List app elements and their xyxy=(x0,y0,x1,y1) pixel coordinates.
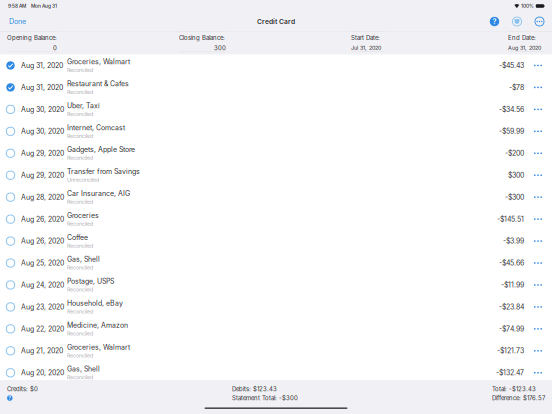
staticText: -$121.73 xyxy=(497,347,524,355)
staticText: Internet, Comcast xyxy=(67,123,125,132)
staticText: -$300 xyxy=(505,193,524,201)
staticText: -$45.66 xyxy=(499,259,524,267)
staticText: -$11.99 xyxy=(501,281,524,289)
staticText: Aug 29, 2020 xyxy=(21,149,64,157)
staticText: Aug 29, 2020 xyxy=(21,171,64,179)
button[interactable]: Aug 31, 2020 xyxy=(0,54,552,76)
staticText: Closing Balance: xyxy=(179,34,225,42)
button[interactable]: Badge xyxy=(509,14,524,29)
staticText: Aug 20, 2020 xyxy=(21,369,64,377)
staticText: Uber, Taxi xyxy=(67,101,100,110)
button[interactable]: Aug 26, 2020 xyxy=(0,208,552,230)
staticText: End Date: xyxy=(508,34,536,42)
staticText: Statement Total: -$300 xyxy=(232,394,298,402)
button[interactable]: Aug 24, 2020 xyxy=(0,274,552,296)
staticText: -$74.99 xyxy=(499,325,524,333)
staticText: Reconciled xyxy=(67,374,93,381)
staticText: Household, eBay xyxy=(67,299,123,307)
staticText: Coffee xyxy=(67,233,88,242)
staticText: -$23.84 xyxy=(499,303,524,311)
staticText: Reconciled xyxy=(67,220,93,227)
staticText: Gas, Shell xyxy=(67,365,100,373)
button[interactable]: Aug 31, 2020 xyxy=(0,76,552,98)
button[interactable]: Aug 21, 2020 xyxy=(0,340,552,362)
staticText: Aug 23, 2020 xyxy=(21,303,64,311)
button[interactable]: Aug 30, 2020 xyxy=(0,98,552,120)
staticText: Done xyxy=(9,17,26,26)
staticText: Mon Aug 31 xyxy=(31,3,57,9)
staticText: Aug 26, 2020 xyxy=(21,215,64,223)
staticText: Car Insurance, AIG xyxy=(67,189,130,198)
staticText: Start Date: xyxy=(351,34,380,42)
staticText: $300 xyxy=(508,171,524,179)
button[interactable]: Aug 30, 2020 xyxy=(0,120,552,142)
staticText: Groceries, Walmart xyxy=(67,343,130,351)
button[interactable]: Aug 20, 2020 xyxy=(0,362,552,384)
staticText: Reconciled xyxy=(67,67,93,73)
button[interactable]: Done xyxy=(7,15,28,28)
button[interactable]: Credits help xyxy=(7,395,13,401)
button[interactable]: Aug 22, 2020 xyxy=(0,318,552,340)
button[interactable]: Aug 29, 2020 xyxy=(0,142,552,164)
staticText: Aug 28, 2020 xyxy=(21,193,64,201)
staticText: Gas, Shell xyxy=(67,255,100,264)
staticText: 9:58 AM xyxy=(8,3,26,9)
staticText: -$145.51 xyxy=(497,215,524,223)
staticText: ? xyxy=(8,395,11,401)
staticText: Credit Card xyxy=(257,17,295,26)
staticText: -$78 xyxy=(509,83,524,92)
button[interactable]: Aug 29, 2020 xyxy=(0,164,552,186)
button[interactable]: Aug 28, 2020 xyxy=(0,186,552,208)
staticText: Aug 31, 2020 xyxy=(21,83,63,92)
button[interactable]: Aug 23, 2020 xyxy=(0,296,552,318)
staticText: Aug 26, 2020 xyxy=(21,237,64,245)
staticText: -$200 xyxy=(505,149,524,157)
staticText: Medicine, Amazon xyxy=(67,321,128,329)
staticText: Aug 24, 2020 xyxy=(21,281,64,289)
staticText: Opening Balance: xyxy=(7,34,57,42)
staticText: Gadgets, Apple Store xyxy=(67,145,135,154)
staticText: Transfer from Savings xyxy=(67,167,140,176)
staticText: Aug 21, 2020 xyxy=(21,347,63,355)
staticText: Unreconciled xyxy=(67,177,99,183)
staticText: Postage, USPS xyxy=(67,277,114,285)
staticText: Reconciled xyxy=(67,111,93,117)
staticText: Groceries, Walmart xyxy=(67,58,130,66)
staticText: -$45.43 xyxy=(499,61,524,70)
staticText: Aug 31, 2020 xyxy=(21,61,63,70)
staticText: Debits: $123.43 xyxy=(232,385,277,393)
staticText: -$3.99 xyxy=(503,237,524,245)
staticText: -$59.99 xyxy=(499,127,524,135)
staticText: ? xyxy=(492,17,496,26)
button[interactable]: Help xyxy=(487,14,502,29)
button[interactable]: Aug 26, 2020 xyxy=(0,230,552,252)
staticText: Groceries xyxy=(67,211,99,220)
staticText: Aug 25, 2020 xyxy=(21,259,64,267)
staticText: Reconciled xyxy=(67,330,93,337)
button[interactable]: More options xyxy=(532,14,547,29)
staticText: Restaurant & Cafes xyxy=(67,80,129,88)
staticText: Reconciled xyxy=(67,89,93,95)
staticText: 300 xyxy=(214,44,226,52)
staticText: Jul 31, 2020 xyxy=(351,44,381,51)
staticText: Reconciled xyxy=(67,133,93,139)
staticText: 0 xyxy=(53,44,57,52)
staticText: Reconciled xyxy=(67,155,93,161)
staticText: Aug 30, 2020 xyxy=(21,105,64,114)
staticText: Reconciled xyxy=(67,352,93,359)
staticText: Reconciled xyxy=(67,264,93,271)
staticText: Reconciled xyxy=(67,308,93,315)
staticText: Aug 30, 2020 xyxy=(21,127,64,135)
staticText: Total: -$123.43 xyxy=(492,385,536,393)
staticText: Reconciled xyxy=(67,286,93,293)
staticText: Aug 22, 2020 xyxy=(21,325,64,333)
button[interactable]: Aug 25, 2020 xyxy=(0,252,552,274)
staticText: Reconciled xyxy=(67,199,93,205)
staticText: Credits: $0 xyxy=(7,385,38,393)
staticText: -$132.47 xyxy=(496,369,524,377)
staticText: 100% xyxy=(521,3,534,9)
staticText: Difference: $176.57 xyxy=(492,394,545,402)
staticText: Aug 31, 2020 xyxy=(508,44,541,51)
staticText: -$34.56 xyxy=(499,105,524,114)
staticText: Reconciled xyxy=(67,242,93,249)
